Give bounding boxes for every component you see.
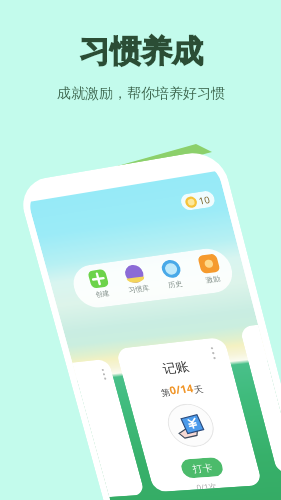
staticText: 打卡 [100, 305, 120, 318]
staticText: 10 [174, 40, 185, 52]
button[interactable]: 打卡 [89, 301, 130, 321]
staticText: 0/14 [98, 221, 122, 236]
button[interactable] [7, 190, 45, 335]
staticText: 成就激励，帮你培养好习惯 [57, 85, 225, 103]
staticText: 习惯养成 [79, 32, 203, 71]
button[interactable] [181, 173, 199, 323]
